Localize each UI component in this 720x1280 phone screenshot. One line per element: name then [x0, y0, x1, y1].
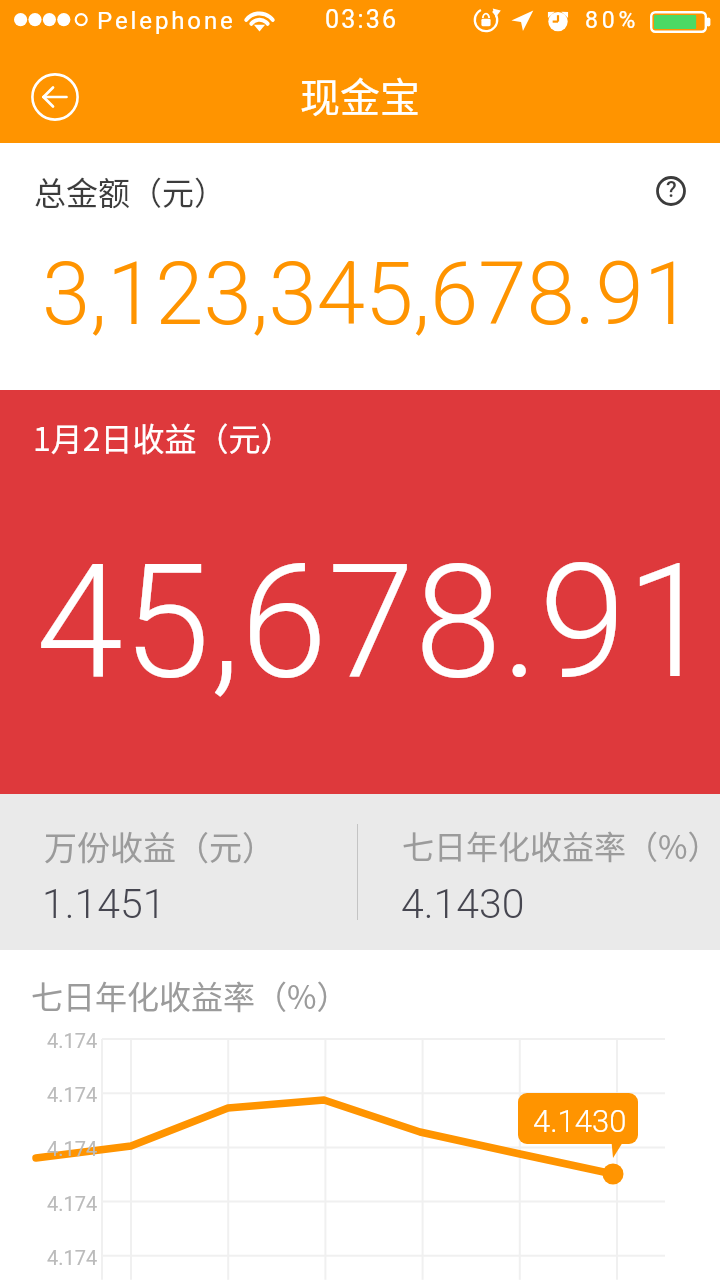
- staticText: 4.1430: [533, 1103, 627, 1139]
- staticText: 4.174: [47, 1246, 98, 1269]
- staticText: 3,123,345,678.91: [42, 243, 692, 345]
- staticText: 80%: [585, 7, 640, 34]
- staticText: 1.1451: [42, 880, 166, 928]
- staticText: ?: [666, 177, 677, 203]
- staticText: 1月2日收益（元）: [33, 414, 293, 460]
- button[interactable]: Help: [652, 172, 690, 210]
- staticText: Pelephone: [97, 7, 236, 35]
- button[interactable]: Latest rate 4.1430: [518, 1093, 638, 1144]
- staticText: 4.1430: [401, 880, 525, 928]
- staticText: 4.174: [47, 1137, 98, 1160]
- staticText: 4.174: [47, 1083, 98, 1106]
- staticText: 七日年化收益率（%）: [402, 822, 720, 868]
- staticText: 现金宝: [300, 66, 420, 124]
- staticText: 4.174: [47, 1029, 98, 1052]
- staticText: 03:36: [325, 5, 399, 34]
- staticText: 4.174: [47, 1192, 98, 1215]
- staticText: 七日年化收益率（%）: [31, 972, 349, 1018]
- staticText: 万份收益（元）: [44, 822, 275, 870]
- staticText: 总金额（元）: [34, 168, 227, 214]
- button[interactable]: 万份收益（元）: [0, 794, 357, 950]
- button[interactable]: Back: [30, 72, 80, 122]
- staticText: 45,678.91: [36, 530, 714, 714]
- button[interactable]: 七日年化收益率（%）: [358, 794, 720, 950]
